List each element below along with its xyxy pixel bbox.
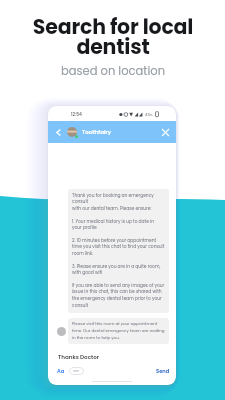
staticText: 3. Please ensure you are in a quite room… (72, 263, 161, 276)
button[interactable]: GIF (69, 367, 84, 375)
button[interactable]: Aa (57, 368, 65, 375)
staticText: 12:54 (71, 111, 82, 117)
staticText: Search for local dentist (27, 12, 199, 62)
staticText: Please visit this room at your appointme… (72, 321, 165, 340)
staticText: 43% (145, 112, 153, 117)
staticText: If you are able to send any images of yo… (72, 282, 165, 309)
staticText: Thanks Doctor (58, 353, 100, 361)
staticText: based on location (61, 63, 165, 79)
staticText: Thank you for booking an emergency consu… (72, 192, 154, 212)
staticText: 1. Your medical history is up to date in… (72, 218, 154, 231)
staticText: Toothfairy (82, 128, 112, 136)
staticText: GIF (73, 368, 80, 374)
staticText: 2. 10 minutes before your appointment ti… (72, 237, 165, 257)
button[interactable]: Send (156, 368, 170, 375)
button[interactable]: Back (53, 127, 64, 138)
button[interactable]: Close (159, 126, 171, 138)
